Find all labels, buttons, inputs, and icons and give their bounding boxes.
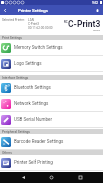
button[interactable]: Home [46, 172, 57, 183]
button[interactable]: Network Settings [0, 96, 103, 111]
staticText: USB Serial Number [14, 117, 52, 122]
staticText: Network Settings [14, 101, 49, 106]
button[interactable]: Memory Switch Settings [0, 40, 103, 55]
staticText: SERIES [93, 29, 101, 32]
button[interactable]: USB Serial Number [0, 112, 103, 127]
button[interactable]: Logo Settings [0, 56, 103, 71]
staticText: Interface Settings [2, 76, 29, 80]
staticText: Printer Self Printing [14, 160, 53, 165]
button[interactable]: Home [92, 5, 102, 15]
staticText: LAN [28, 18, 34, 22]
staticText: C-Print3 [68, 19, 101, 29]
button[interactable]: Printer Self Printing [0, 155, 103, 170]
button[interactable]: Bluetooth Settings [0, 80, 103, 95]
staticText: Peripheral Settings [2, 130, 31, 134]
staticText: Printer Settings [18, 8, 48, 13]
staticText: 9:52 [92, 1, 99, 5]
staticText: C-Print3 [28, 22, 40, 26]
staticText: Bluetooth Settings [14, 85, 51, 90]
staticText: Selected Printer : [2, 18, 26, 22]
button[interactable]: Barcode Reader Settings [0, 134, 103, 149]
button[interactable]: Back [18, 172, 29, 183]
button[interactable]: Recent apps [75, 172, 86, 183]
staticText: Barcode Reader Settings [14, 139, 64, 144]
staticText: Print Settings [2, 36, 23, 40]
staticText: Memory Switch Settings [14, 45, 63, 50]
staticText: 00:11:62:00:00:00 [28, 26, 53, 30]
staticText: Logo Settings [14, 61, 42, 66]
staticText: Others [2, 151, 12, 155]
staticText: RC [64, 20, 68, 23]
button[interactable]: Back [0, 5, 10, 15]
